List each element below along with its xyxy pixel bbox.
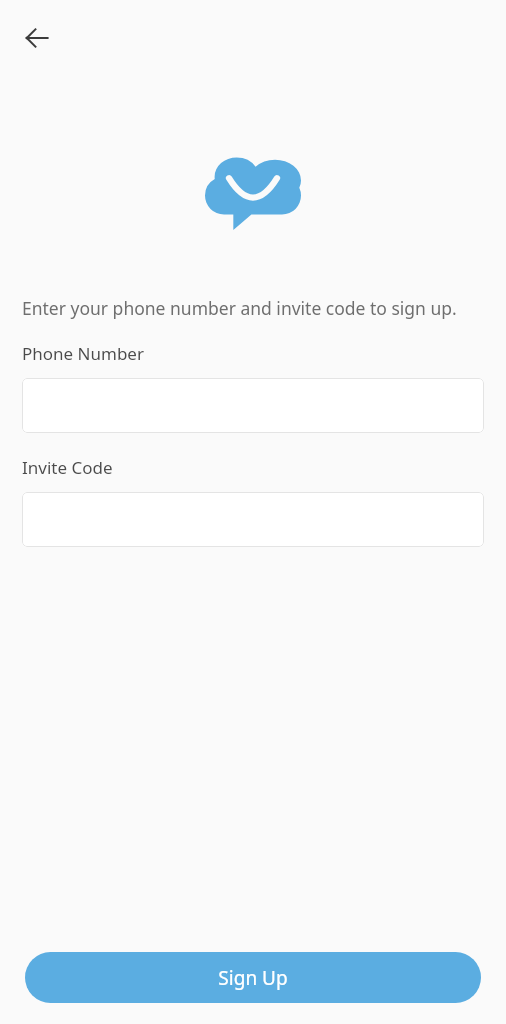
button[interactable]: Text input field xyxy=(22,378,484,433)
staticText: Phone Number xyxy=(22,342,144,365)
button[interactable]: Sign Up xyxy=(25,952,481,1003)
staticText: Sign Up xyxy=(218,965,288,991)
button[interactable]: Back xyxy=(13,14,61,62)
staticText: Invite Code xyxy=(22,456,113,479)
button[interactable]: Text input field xyxy=(22,492,484,547)
staticText: Enter your phone number and invite code … xyxy=(22,296,457,320)
